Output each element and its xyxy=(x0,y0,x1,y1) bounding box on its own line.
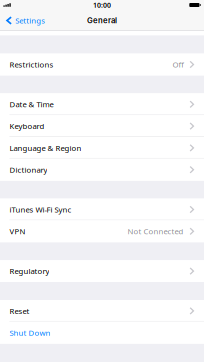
staticText: Settings xyxy=(15,15,45,26)
staticText: Keyboard xyxy=(9,121,44,131)
staticText: General xyxy=(87,16,117,25)
staticText: Dictionary xyxy=(9,164,47,175)
staticText: 10:00 xyxy=(93,0,111,10)
button[interactable]: iTunes Wi-Fi Sync xyxy=(0,199,204,220)
staticText: Language & Region xyxy=(9,143,81,153)
staticText: Date & Time xyxy=(9,99,53,109)
button[interactable]: Shut Down xyxy=(0,322,204,344)
button[interactable]: Keyboard xyxy=(0,115,204,137)
staticText: Reset xyxy=(9,306,29,316)
staticText: VPN xyxy=(9,226,25,236)
button[interactable]: VPN xyxy=(0,220,204,242)
button[interactable]: Language & Region xyxy=(0,137,204,159)
button[interactable]: Date & Time xyxy=(0,93,204,115)
staticText: Restrictions xyxy=(9,59,53,70)
staticText: iTunes Wi-Fi Sync xyxy=(9,204,71,215)
staticText: Shut Down xyxy=(9,327,50,338)
button[interactable]: Restrictions xyxy=(0,54,204,75)
button[interactable]: Regulatory xyxy=(0,260,204,282)
staticText: Off xyxy=(172,59,183,70)
button[interactable]: Dictionary xyxy=(0,159,204,181)
staticText: Regulatory xyxy=(9,266,49,276)
button[interactable]: Reset xyxy=(0,300,204,322)
staticText: Not Connected xyxy=(127,226,183,236)
button[interactable]: Settings xyxy=(0,10,50,31)
